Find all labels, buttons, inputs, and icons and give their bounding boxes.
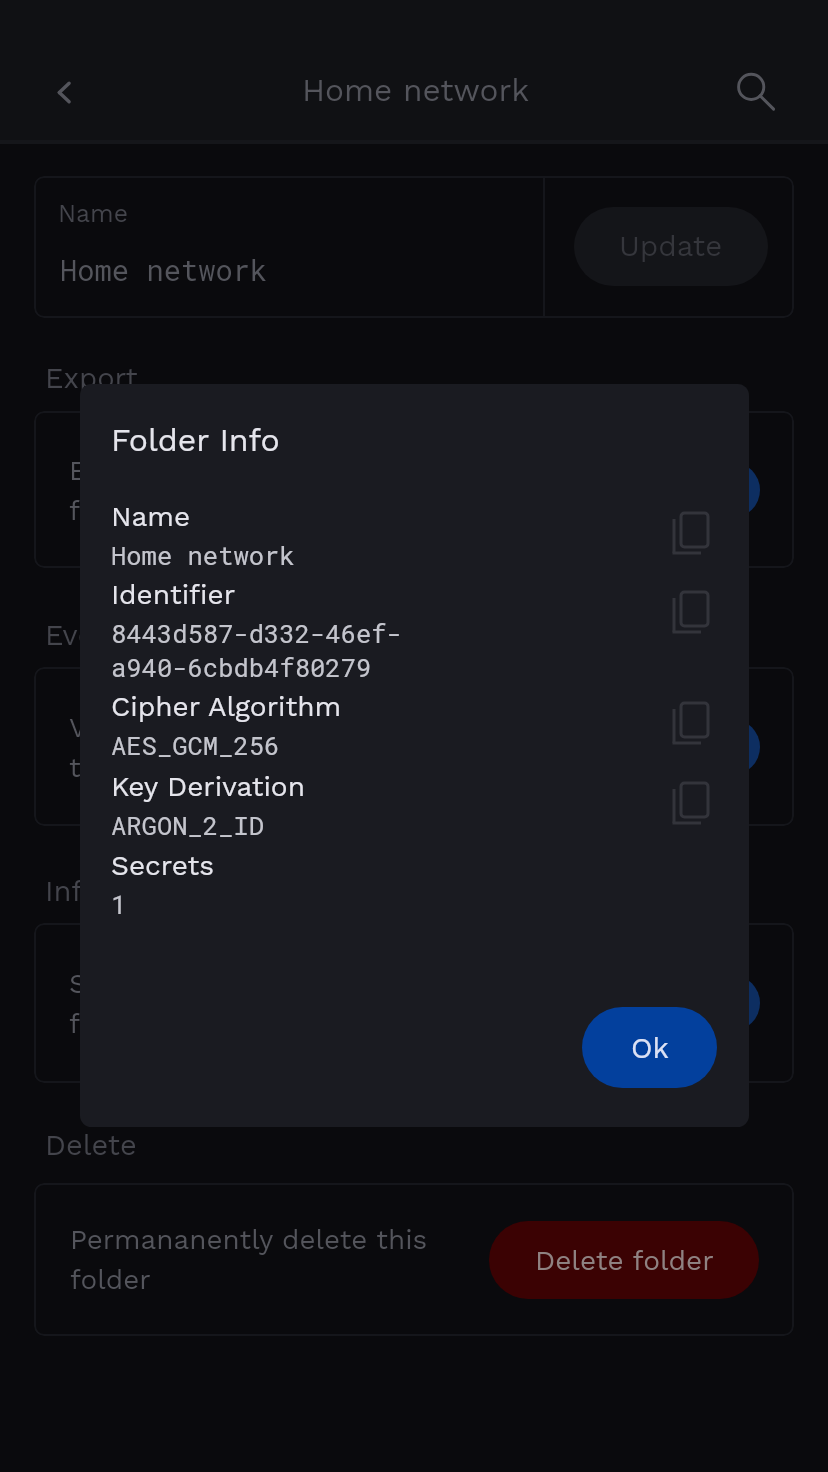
staticText: Home network xyxy=(302,72,530,109)
staticText: Ok xyxy=(631,1031,669,1065)
button[interactable]: Back xyxy=(16,46,112,142)
staticText: Export all secrets to a file xyxy=(69,454,371,526)
staticText: 8443d587-d332-46ef- xyxy=(111,616,402,650)
staticText: View the event log for this folder xyxy=(69,711,368,783)
button[interactable]: Show info about this folder xyxy=(34,923,794,1083)
staticText: Info xyxy=(45,874,100,908)
staticText: Home network xyxy=(60,251,268,289)
button[interactable]: Copy Name xyxy=(638,487,734,583)
staticText: Show info about this folder xyxy=(69,967,352,1039)
staticText: Permananently delete this folder xyxy=(70,1223,428,1295)
staticText: Update xyxy=(619,229,723,264)
button[interactable]: Delete folder xyxy=(489,1221,759,1299)
button[interactable]: Export all secrets to a file xyxy=(34,411,794,568)
button[interactable]: Event log xyxy=(510,719,760,775)
staticText: Key Derivation xyxy=(111,770,305,803)
staticText: Identifier xyxy=(111,578,236,611)
button[interactable]: View the event log for this folder xyxy=(34,667,794,826)
staticText: a940-6cbdb4f80279 xyxy=(111,650,372,684)
staticText: ARGON_2_ID xyxy=(111,808,265,842)
staticText: Folder Info xyxy=(111,421,280,459)
staticText: Cipher Algorithm xyxy=(111,690,342,723)
staticText: 1 xyxy=(111,887,127,921)
staticText: Secrets xyxy=(111,849,214,882)
staticText: Event log xyxy=(45,618,176,652)
button[interactable]: Copy Key Derivation xyxy=(638,757,734,853)
staticText: Export xyxy=(45,361,138,395)
button[interactable]: Folder info xyxy=(510,975,760,1031)
staticText: Delete folder xyxy=(535,1244,714,1277)
staticText: Name xyxy=(58,199,129,228)
staticText: Delete xyxy=(45,1128,137,1162)
staticText: Name xyxy=(111,500,191,533)
staticText: Home network xyxy=(111,538,295,572)
button[interactable]: Ok xyxy=(582,1007,717,1088)
button[interactable]: Search xyxy=(708,47,804,143)
button[interactable]: Export xyxy=(510,462,760,518)
staticText: AES_GCM_256 xyxy=(111,728,280,762)
button[interactable]: Update xyxy=(574,207,768,286)
button[interactable]: Copy Identifier xyxy=(638,566,734,662)
button[interactable]: Copy Cipher Algorithm xyxy=(638,677,734,773)
